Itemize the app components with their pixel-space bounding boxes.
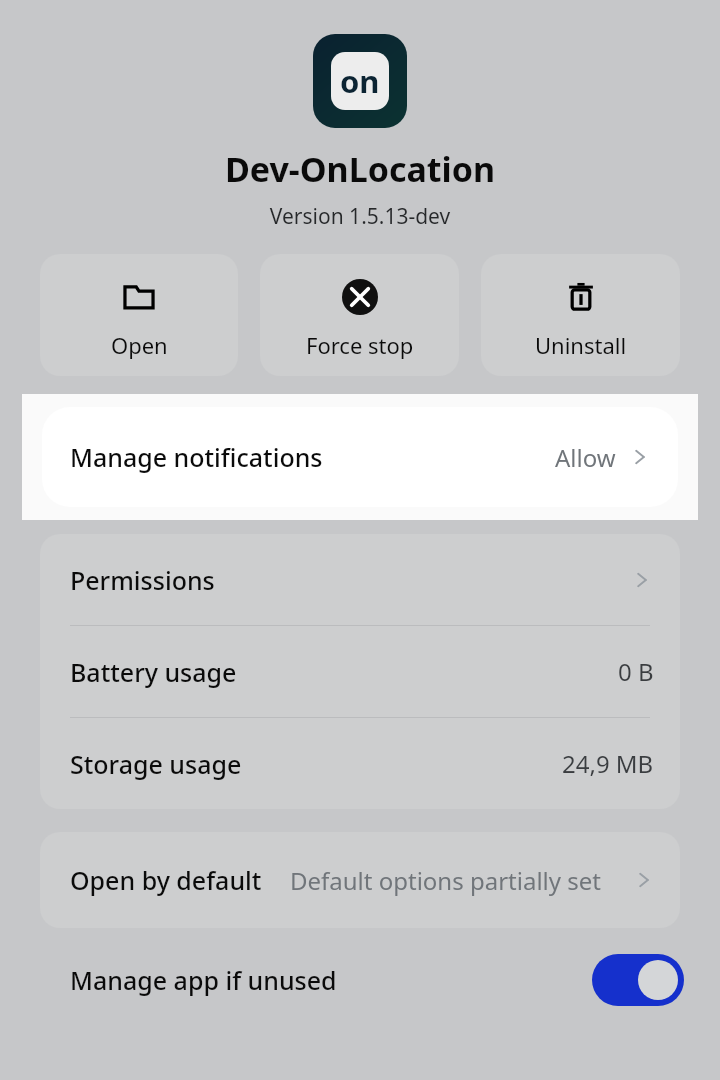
staticText: on <box>340 60 380 102</box>
button[interactable]: Force stop <box>260 254 459 376</box>
staticText: Allow <box>555 441 616 474</box>
staticText: Battery usage <box>70 655 618 689</box>
other: Open <box>121 279 157 315</box>
staticText: Open <box>111 330 168 360</box>
button[interactable]: Storage usage <box>40 718 680 809</box>
staticText: Storage usage <box>70 747 562 781</box>
button[interactable]: Open by default <box>40 832 680 928</box>
other: Uninstall <box>563 279 599 315</box>
staticText: Force stop <box>306 330 414 360</box>
staticText: Manage app if unused <box>70 963 592 997</box>
staticText: Permissions <box>70 563 630 597</box>
button[interactable]: Battery usage <box>40 626 680 717</box>
staticText: Manage notifications <box>70 440 555 474</box>
staticText: Open by default <box>70 863 262 897</box>
staticText: 0 B <box>618 655 654 688</box>
staticText: Dev-OnLocation <box>0 146 720 192</box>
button[interactable]: Manage app if unused <box>0 932 720 1028</box>
button[interactable]: Permissions <box>40 534 680 625</box>
button[interactable]: Manage app if unused, on <box>592 954 684 1006</box>
staticText: Uninstall <box>535 330 627 360</box>
button[interactable]: Uninstall <box>481 254 680 376</box>
staticText: 24,9 MB <box>562 747 654 780</box>
staticText: Default options partially set <box>290 864 626 897</box>
button[interactable]: Open <box>40 254 238 376</box>
other: Force stop <box>342 279 378 315</box>
staticText: Version 1.5.13-dev <box>0 202 720 231</box>
button[interactable]: Manage notifications <box>42 407 678 507</box>
